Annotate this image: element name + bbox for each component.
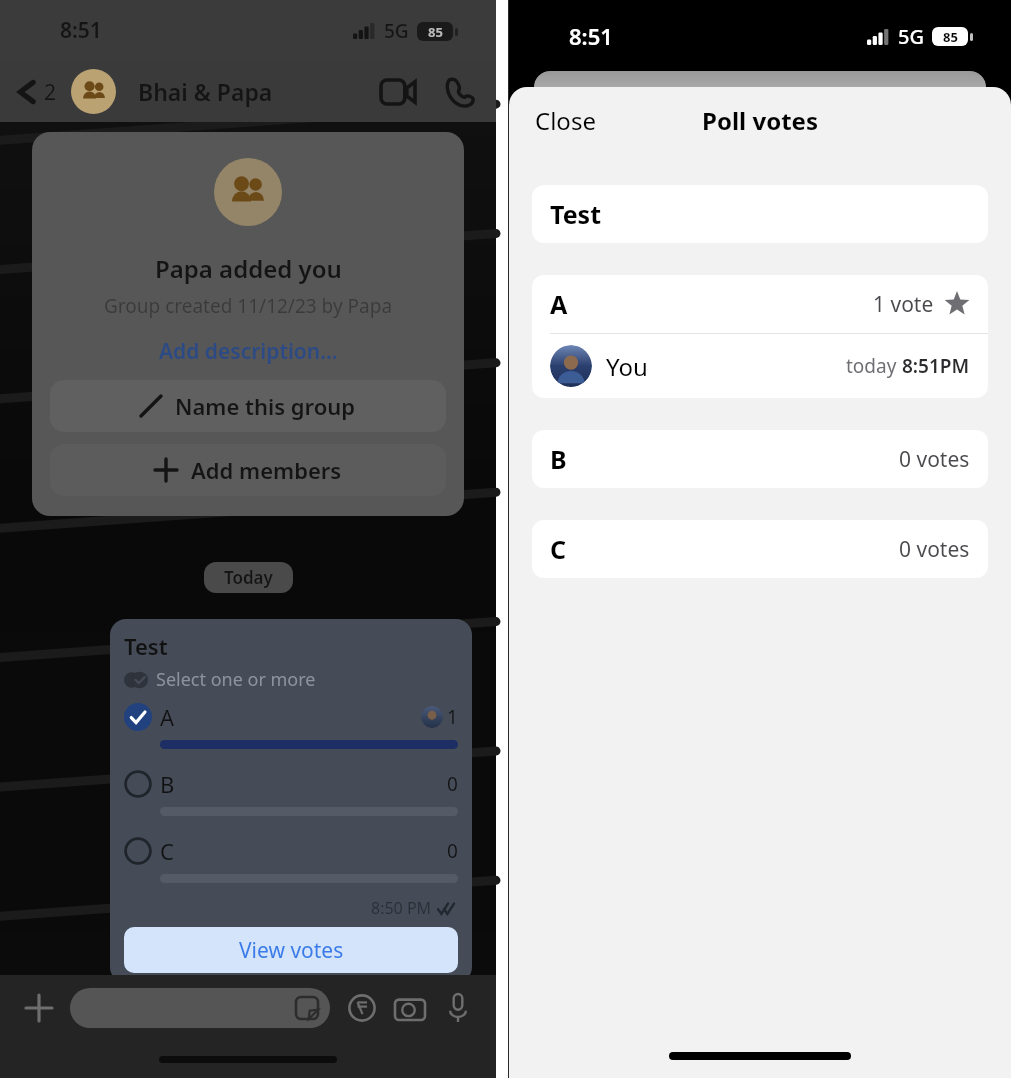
staticText: today (846, 353, 902, 379)
staticText: 2 (44, 78, 57, 107)
staticText: 1 vote (873, 290, 934, 319)
staticText: Add members (191, 455, 342, 485)
staticText: 85 (428, 23, 443, 41)
button[interactable]: Video call (374, 68, 422, 116)
staticText: Select one or more (156, 667, 316, 692)
button[interactable]: Name this group (50, 380, 446, 432)
staticText: C (550, 532, 567, 566)
staticText: 5G (898, 23, 924, 50)
staticText: Test (550, 197, 602, 231)
staticText: B (550, 442, 567, 476)
staticText: Today (224, 566, 273, 589)
staticText: 1 (447, 704, 458, 730)
staticText: 8:51 (60, 16, 102, 45)
button[interactable]: View votes (124, 927, 458, 973)
button[interactable]: C (532, 520, 988, 578)
staticText: 0 (447, 838, 458, 864)
staticText: 0 (447, 771, 458, 797)
button[interactable]: Voice call (436, 68, 484, 116)
staticText: Test (124, 631, 168, 661)
staticText: You (606, 350, 648, 383)
staticText: Name this group (175, 391, 356, 421)
staticText: B (160, 769, 175, 799)
staticText: A (550, 287, 568, 321)
other: Back (16, 77, 38, 107)
staticText: View votes (239, 936, 344, 965)
button[interactable]: Camera (390, 988, 430, 1028)
button[interactable]: Voice message (438, 988, 478, 1028)
staticText: C (160, 836, 174, 866)
button[interactable]: A (124, 702, 458, 732)
button[interactable]: Add description... (155, 333, 342, 370)
staticText: Bhai & Papa (138, 76, 273, 107)
staticText: 8:51 (569, 21, 613, 51)
button[interactable] (70, 988, 330, 1028)
button[interactable]: B (532, 430, 988, 488)
staticText: 85 (943, 28, 958, 46)
button[interactable]: A (532, 275, 988, 398)
button[interactable]: Test (532, 185, 988, 243)
staticText: A (160, 702, 175, 732)
staticText: Papa added you (155, 252, 342, 285)
staticText: 8:50 PM (371, 897, 432, 919)
staticText: 0 votes (899, 535, 970, 564)
staticText: 8:51PM (902, 353, 970, 379)
button[interactable]: Back (12, 77, 61, 107)
button[interactable]: Add members (50, 444, 446, 496)
button[interactable]: Send money (342, 988, 382, 1028)
staticText: 0 votes (899, 445, 970, 474)
staticText: Group created 11/12/23 by Papa (104, 293, 393, 319)
staticText: 5G (384, 18, 409, 44)
button[interactable]: Close (531, 100, 600, 141)
button[interactable]: Attach (18, 987, 60, 1029)
button[interactable]: B (124, 769, 458, 799)
button[interactable]: Bhai & Papa (71, 69, 374, 114)
button[interactable]: C (124, 836, 458, 866)
staticText: Poll votes (702, 104, 818, 137)
